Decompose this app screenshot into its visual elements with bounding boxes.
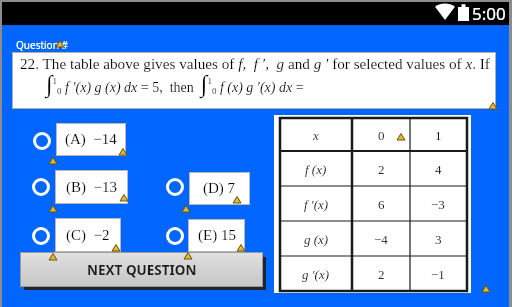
staticText: x <box>313 128 319 142</box>
staticText: (A) −14 <box>65 131 117 148</box>
button[interactable] <box>33 132 51 150</box>
staticText: 1 <box>435 128 442 142</box>
staticText: −1 <box>431 267 445 281</box>
button[interactable]: (B) −13 <box>55 170 128 204</box>
button[interactable]: (C) −2 <box>55 218 121 252</box>
staticText: 22. The table above gives values of f, f… <box>20 55 490 72</box>
staticText: ∫10 f ′(x) g (x) dx = 5, then ∫10 f (x) … <box>46 71 304 98</box>
button[interactable] <box>32 178 50 196</box>
staticText: 6 <box>378 197 385 211</box>
button[interactable]: NEXT QUESTION <box>20 252 263 287</box>
staticText: Question # <box>16 38 68 52</box>
staticText: 2 <box>378 267 385 281</box>
button[interactable]: (A) −14 <box>56 123 126 156</box>
button[interactable] <box>166 178 184 196</box>
staticText: 2 <box>378 162 385 176</box>
button[interactable] <box>166 227 184 245</box>
button[interactable]: (D) 7 <box>189 172 250 205</box>
staticText: (D) 7 <box>203 180 236 197</box>
staticText: 3 <box>435 232 442 246</box>
staticText: (E) 15 <box>198 227 236 244</box>
staticText: −3 <box>431 197 445 211</box>
staticText: (B) −13 <box>66 179 117 196</box>
staticText: f (x) <box>305 162 327 176</box>
button[interactable]: (E) 15 <box>188 219 245 252</box>
staticText: 0 <box>378 128 385 142</box>
staticText: f ′(x) <box>304 197 329 211</box>
button[interactable] <box>32 227 50 245</box>
staticText: g ′(x) <box>302 267 330 281</box>
staticText: 4 <box>435 162 442 176</box>
staticText: −4 <box>374 232 388 246</box>
staticText: (C) −2 <box>66 227 110 244</box>
staticText: 5:00 <box>472 2 506 25</box>
staticText: g (x) <box>304 232 329 246</box>
staticText: NEXT QUESTION <box>87 261 197 279</box>
